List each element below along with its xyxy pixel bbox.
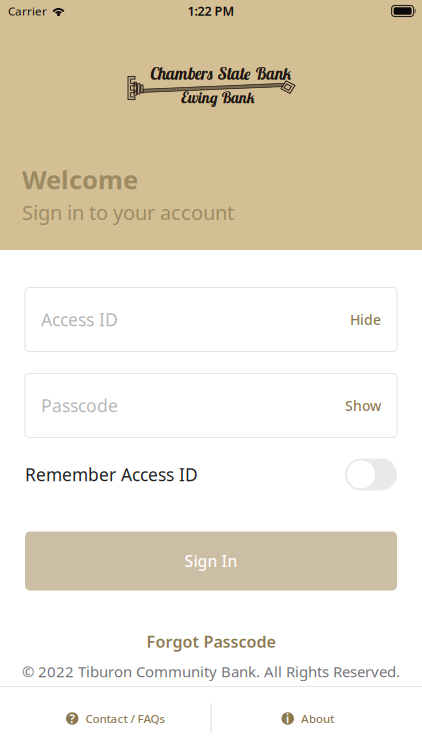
staticText: Chambers State Bank [150, 63, 292, 84]
staticText: Sign In [184, 550, 237, 572]
staticText: Forgot Passcode [146, 630, 275, 652]
button[interactable]: ? [0, 687, 210, 750]
staticText: Ewing Bank [181, 88, 255, 107]
staticText: Hide [350, 310, 381, 329]
button[interactable]: Sign In [25, 531, 397, 590]
staticText: Sign in to your account [22, 199, 234, 226]
button[interactable]: Hide [336, 298, 381, 341]
button[interactable]: Forgot Passcode [146, 630, 275, 652]
button[interactable]: i [211, 687, 422, 750]
staticText: Contact / FAQs [85, 711, 165, 726]
staticText: ? [69, 710, 75, 726]
staticText: Welcome [22, 162, 138, 197]
staticText: Carrier [8, 3, 47, 19]
staticText: Access ID [41, 307, 118, 331]
staticText: Show [345, 396, 381, 415]
button[interactable]: Show [331, 384, 381, 427]
staticText: 1:22 PM [187, 2, 234, 20]
staticText: About [301, 711, 334, 726]
staticText: Passcode [41, 393, 118, 417]
button[interactable]: Remember Access ID [345, 458, 397, 490]
staticText: i [286, 710, 290, 726]
staticText: © 2022 Tiburon Community Bank. All Right… [22, 661, 400, 682]
staticText: Remember Access ID [25, 463, 198, 486]
